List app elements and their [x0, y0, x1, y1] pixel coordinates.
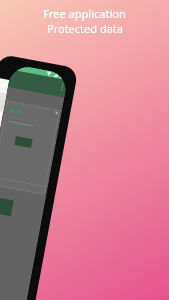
- staticText: Protected data: [47, 21, 123, 36]
- staticText: Free application: [43, 6, 126, 21]
